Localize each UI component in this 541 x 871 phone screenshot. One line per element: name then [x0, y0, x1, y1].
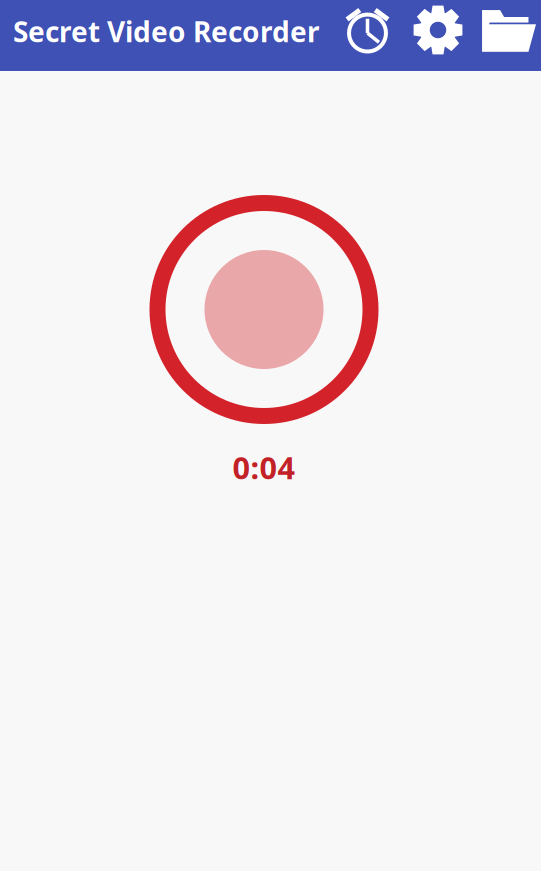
staticText: Secret Video Recorder: [13, 13, 320, 50]
button[interactable]: Settings: [403, 0, 473, 71]
button[interactable]: Timer: [332, 0, 403, 71]
button[interactable]: Start recording: [149, 195, 378, 424]
staticText: 0:04: [232, 447, 295, 488]
button[interactable]: Recordings: [473, 1, 541, 69]
